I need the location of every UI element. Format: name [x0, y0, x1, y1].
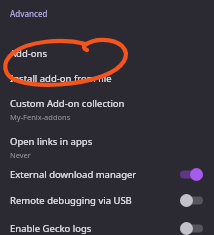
staticText: Enable Gecko logs [10, 222, 180, 235]
staticText: Open links in apps [10, 135, 93, 148]
staticText: Never [10, 150, 31, 160]
staticText: External download manager [10, 168, 180, 181]
staticText: Remote debugging via USB [10, 194, 180, 207]
button[interactable]: Install add-on from file [0, 66, 214, 92]
staticText: Install add-on from file [10, 72, 112, 85]
other: Enable Gecko logs [180, 222, 203, 235]
button[interactable]: Remote debugging via USB [0, 188, 214, 212]
staticText: Advanced [10, 8, 48, 19]
button[interactable]: Advanced [0, 4, 214, 24]
button[interactable]: Enable Gecko logs [0, 216, 214, 235]
other: External download manager [180, 168, 203, 181]
staticText: Add-ons [10, 47, 47, 60]
button[interactable]: External download manager [0, 162, 214, 186]
button[interactable]: Add-ons [0, 42, 214, 66]
button[interactable]: Custom Add-on collection [0, 92, 214, 122]
other: Remote debugging via USB [180, 194, 203, 207]
staticText: Custom Add-on collection [10, 97, 125, 110]
button[interactable]: Open links in apps [0, 130, 214, 160]
staticText: My-Fenix-addons [10, 112, 71, 122]
